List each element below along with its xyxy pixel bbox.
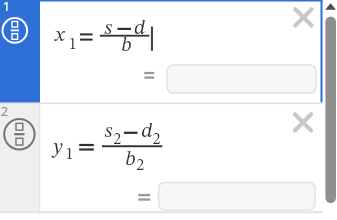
button[interactable] — [158, 182, 315, 210]
button[interactable] — [292, 111, 315, 134]
button[interactable] — [167, 65, 316, 93]
button[interactable] — [323, 1, 337, 11]
button[interactable] — [0, 104, 40, 212]
button[interactable] — [292, 6, 315, 29]
button[interactable] — [0, 0, 40, 103]
